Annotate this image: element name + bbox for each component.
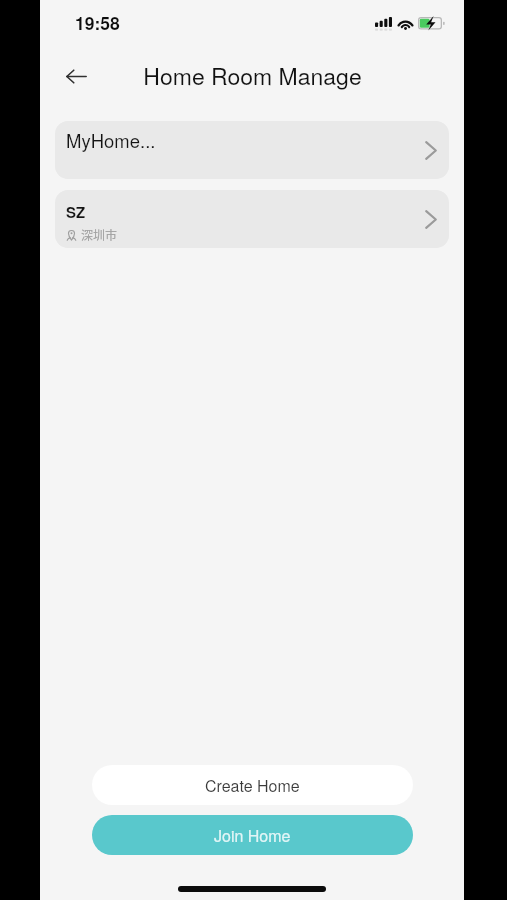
staticText: 深圳市 <box>81 226 118 243</box>
button[interactable]: SZ <box>55 190 449 248</box>
staticText: Join Home <box>214 824 291 847</box>
button[interactable]: Join Home <box>92 815 413 855</box>
button[interactable]: Back <box>58 58 94 94</box>
staticText: 19:58 <box>75 10 120 35</box>
staticText: Home Room Manage <box>143 59 362 92</box>
staticText: MyHome... <box>66 127 156 153</box>
staticText: Create Home <box>205 774 300 797</box>
staticText: SZ <box>66 201 86 222</box>
button[interactable]: Create Home <box>92 765 413 805</box>
button[interactable]: MyHome... <box>55 121 449 179</box>
